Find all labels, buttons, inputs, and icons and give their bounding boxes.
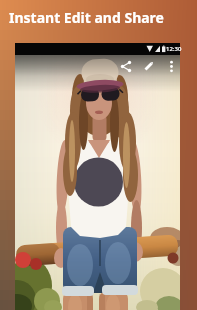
button[interactable] [141, 59, 156, 74]
staticText: 12:30 [166, 45, 182, 53]
button[interactable] [165, 59, 178, 74]
staticText: Instant Edit and Share [9, 8, 164, 27]
button[interactable] [119, 59, 134, 74]
